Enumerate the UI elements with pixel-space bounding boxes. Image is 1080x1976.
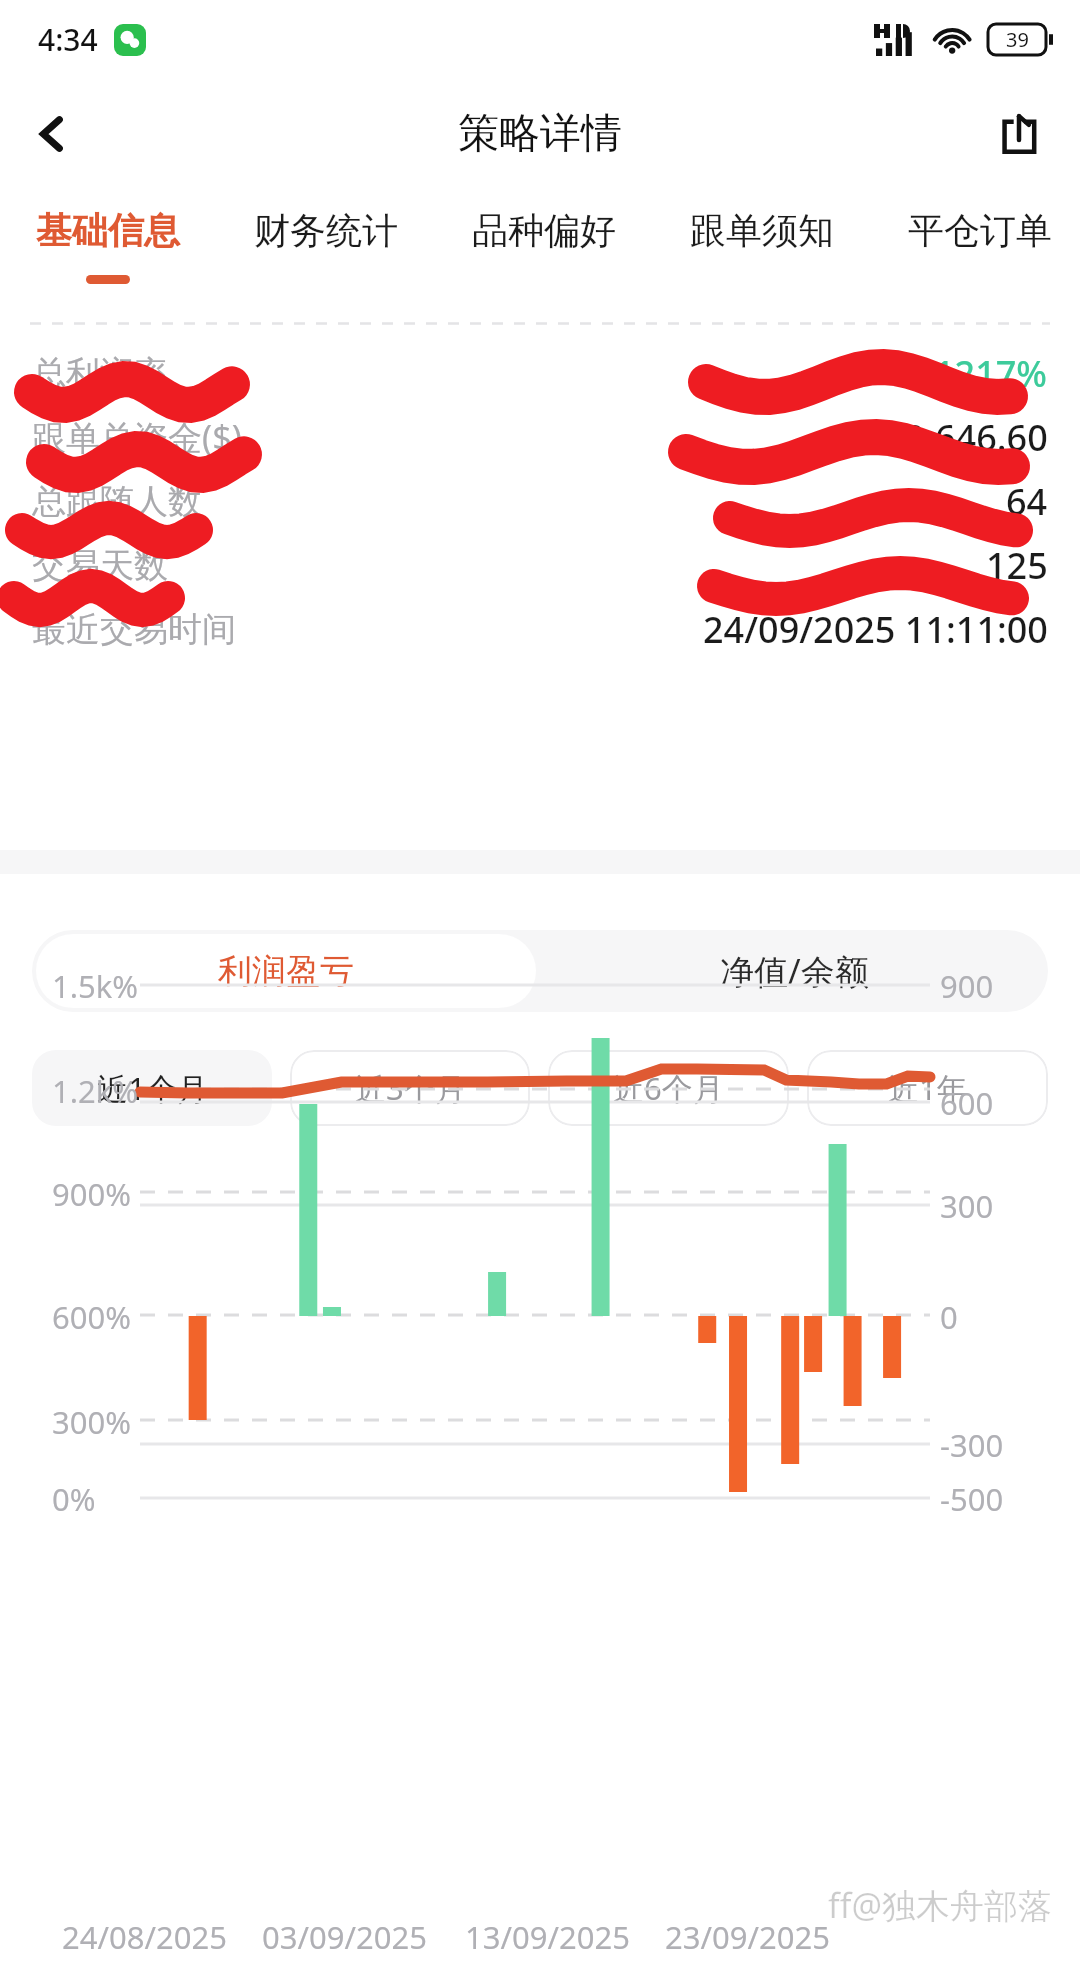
staticText: 24/09/2025 11:11:00 (703, 605, 1048, 654)
staticText: 净值/余额 (720, 948, 869, 994)
staticText: 财务统计 (254, 208, 398, 253)
button[interactable]: Share (986, 101, 1052, 167)
staticText: 平仓订单 (908, 208, 1052, 253)
staticText: 20,646.60 (884, 413, 1048, 462)
staticText: 39 (1006, 26, 1029, 53)
button[interactable]: 平仓订单 (908, 200, 1052, 292)
button[interactable]: 近1年 (807, 1050, 1048, 1126)
staticText: 近1年 (888, 1067, 968, 1109)
staticText: 600% (52, 1296, 131, 1338)
staticText: 125 (986, 541, 1048, 590)
staticText: 900% (52, 1173, 131, 1215)
staticText: 4:34 (38, 19, 98, 60)
staticText: 600 (940, 1082, 994, 1124)
button[interactable]: 近1个月 (32, 1050, 272, 1126)
staticText: 1.5k% (52, 965, 139, 1007)
button[interactable]: 近6个月 (548, 1050, 789, 1126)
button[interactable]: 近3个月 (290, 1050, 530, 1126)
staticText: 交易天数 (32, 544, 168, 587)
button[interactable]: Back (20, 101, 86, 167)
staticText: 跟单须知 (690, 208, 834, 253)
staticText: 近3个月 (355, 1067, 466, 1109)
staticText: 64 (1006, 477, 1048, 526)
staticText: 13/09/2025 (465, 1916, 630, 1958)
staticText: 策略详情 (458, 108, 622, 160)
button[interactable]: 净值/余额 (540, 930, 1048, 1012)
staticText: 900 (940, 965, 994, 1007)
button[interactable]: 基础信息 (36, 200, 180, 292)
staticText: ff@独木舟部落 (828, 1882, 1052, 1928)
staticText: 基础信息 (36, 208, 180, 253)
staticText: 总利润率 (32, 352, 168, 395)
staticText: 300% (52, 1401, 131, 1443)
staticText: 近1个月 (97, 1067, 208, 1109)
staticText: 0 (940, 1296, 958, 1338)
staticText: 1217% (934, 349, 1048, 398)
staticText: -300 (940, 1424, 1004, 1466)
staticText: 03/09/2025 (262, 1916, 427, 1958)
staticText: 跟单总资金($) (32, 414, 242, 460)
staticText: 利润盈亏 (218, 950, 354, 993)
staticText: 总跟随人数 (32, 480, 202, 523)
button[interactable]: 财务统计 (254, 200, 398, 292)
staticText: 最近交易时间 (32, 608, 236, 651)
staticText: 1.2k% (52, 1070, 139, 1112)
staticText: 近6个月 (613, 1067, 724, 1109)
staticText: 24/08/2025 (62, 1916, 227, 1958)
staticText: 300 (940, 1185, 994, 1227)
button[interactable]: 跟单须知 (690, 200, 834, 292)
staticText: 品种偏好 (472, 208, 616, 253)
staticText: -500 (940, 1478, 1004, 1520)
button[interactable]: 品种偏好 (472, 200, 616, 292)
staticText: 23/09/2025 (665, 1916, 830, 1958)
button[interactable]: 利润盈亏 (36, 934, 536, 1008)
staticText: 0% (52, 1478, 96, 1520)
